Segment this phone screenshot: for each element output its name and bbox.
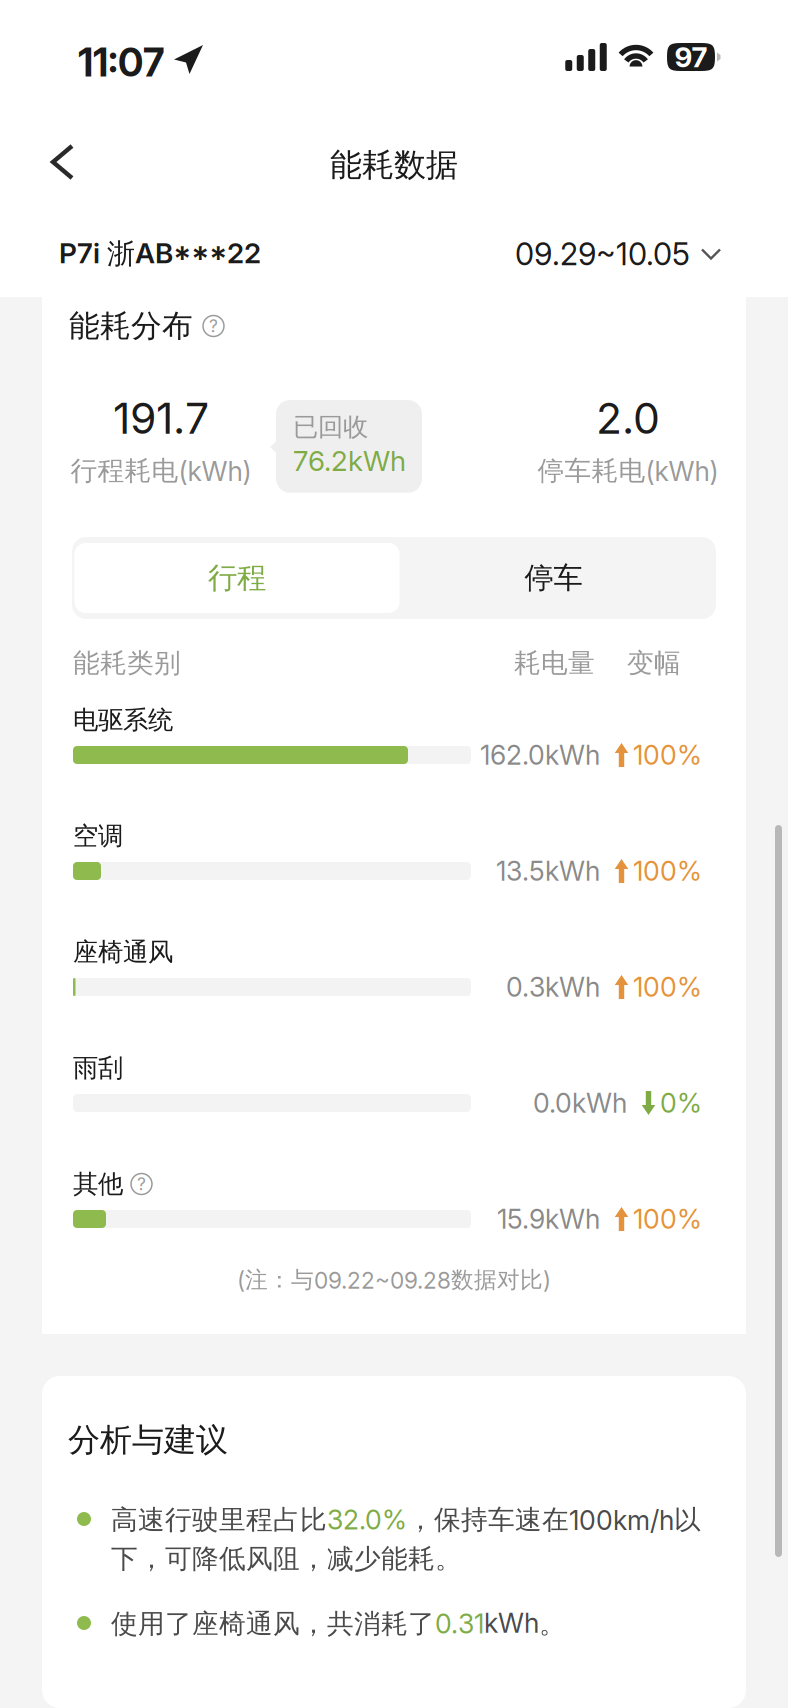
- staticText: 15.9kWh: [497, 1203, 600, 1235]
- staticText: P7i 浙AB***22: [59, 236, 261, 271]
- staticText: 100%: [633, 971, 702, 1003]
- staticText: ?: [209, 315, 218, 336]
- staticText: 162.0kWh: [480, 739, 600, 771]
- staticText: 能耗分布: [69, 307, 193, 345]
- staticText: ，保持车速在100km/h以: [407, 1503, 701, 1537]
- staticText: 100%: [633, 855, 702, 887]
- staticText: 电驱系统: [73, 704, 173, 736]
- staticText: kWh。: [484, 1607, 566, 1641]
- staticText: 行程: [208, 559, 266, 596]
- button[interactable]: 行程: [74, 543, 399, 613]
- staticText: 32.0%: [327, 1504, 407, 1536]
- staticText: 空调: [73, 820, 123, 852]
- staticText: 09.29~10.05: [515, 235, 690, 272]
- button[interactable]: 09.29~10.05: [515, 237, 721, 271]
- staticText: 停车: [524, 559, 582, 596]
- staticText: 能耗类别: [73, 646, 181, 680]
- staticText: 其他: [73, 1168, 123, 1200]
- staticText: 变幅: [627, 646, 681, 680]
- staticText: 行程耗电(kWh): [70, 454, 251, 488]
- staticText: 0.3kWh: [506, 971, 600, 1003]
- staticText: 座椅通风: [73, 936, 173, 968]
- staticText: 停车耗电(kWh): [537, 454, 718, 488]
- staticText: 耗电量: [514, 646, 595, 680]
- staticText: 雨刮: [73, 1052, 123, 1084]
- staticText: ?: [137, 1173, 146, 1194]
- staticText: 0.0kWh: [533, 1087, 627, 1119]
- staticText: 191.7: [113, 392, 209, 444]
- staticText: 100%: [633, 1203, 702, 1235]
- staticText: 能耗数据: [330, 145, 458, 185]
- staticText: 下，可降低风阻，减少能耗。: [111, 1542, 462, 1576]
- staticText: 0%: [660, 1087, 702, 1119]
- staticText: 100%: [633, 739, 702, 771]
- button[interactable]: Back: [42, 135, 86, 189]
- staticText: 2.0: [596, 392, 660, 444]
- staticText: 高速行驶里程占比: [111, 1503, 327, 1537]
- staticText: 分析与建议: [68, 1420, 228, 1460]
- staticText: 13.5kWh: [496, 855, 600, 887]
- staticText: 97: [674, 40, 707, 74]
- staticText: 使用了座椅通风，共消耗了: [111, 1607, 435, 1641]
- button[interactable]: 停车: [407, 543, 699, 613]
- staticText: 已回收: [293, 411, 368, 443]
- staticText: 76.2kWh: [293, 444, 406, 478]
- staticText: (注：与09.22~09.28数据对比): [237, 1266, 551, 1294]
- staticText: 11:07: [78, 39, 164, 86]
- staticText: 0.31: [435, 1608, 484, 1640]
